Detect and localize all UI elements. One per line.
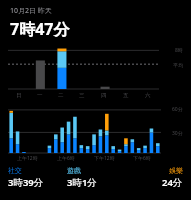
staticText: 二	[58, 92, 64, 99]
staticText: 遊戲	[67, 166, 81, 175]
staticText: 六	[145, 92, 151, 99]
staticText: 3時1分	[67, 176, 97, 189]
staticText: 一	[37, 92, 43, 99]
staticText: 30分	[172, 130, 183, 137]
staticText: 五	[123, 92, 129, 99]
staticText: 平均	[173, 62, 183, 68]
staticText: 10月2日 昨天	[10, 6, 52, 16]
staticText: 下午12時	[94, 155, 115, 162]
button[interactable]: 社交	[8, 166, 67, 189]
staticText: 24分	[162, 176, 183, 189]
staticText: 日	[16, 92, 22, 99]
staticText: 3時39分	[8, 176, 44, 189]
staticText: 社交	[8, 166, 22, 175]
staticText: 娛樂	[169, 166, 183, 175]
button[interactable]: 娛樂	[125, 166, 183, 189]
staticText: 7時47分	[10, 18, 70, 40]
button[interactable]: 60分	[8, 104, 183, 162]
staticText: 四	[101, 92, 107, 99]
staticText: 三	[79, 92, 85, 99]
button[interactable]: 遊戲	[67, 166, 125, 189]
staticText: 8時	[175, 47, 183, 54]
staticText: 上午12時	[17, 155, 38, 162]
button[interactable]: 8時	[8, 43, 183, 99]
staticText: 60分	[172, 106, 183, 113]
staticText: 下午6時	[133, 155, 151, 162]
staticText: 上午6時	[57, 155, 75, 162]
